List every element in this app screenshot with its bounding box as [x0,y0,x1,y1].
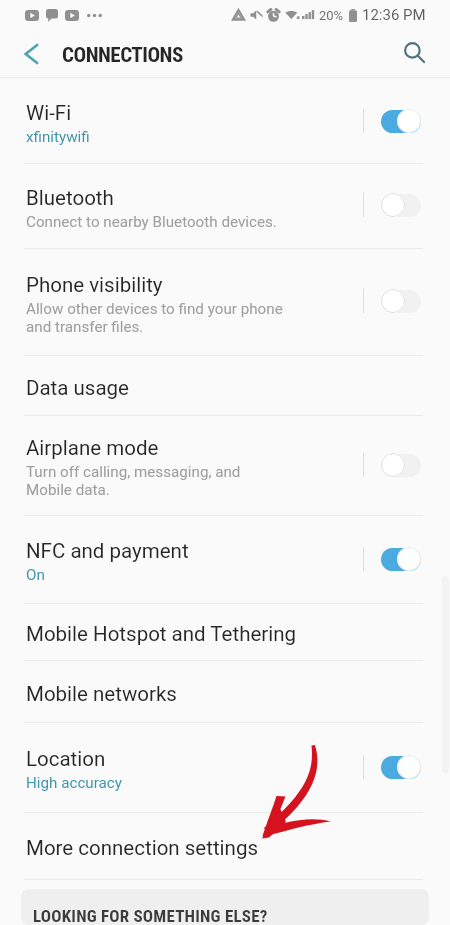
staticText: On [26,566,45,584]
staticText: NFC and payment [26,539,189,563]
staticText: Phone visibility [26,273,163,297]
staticText: Turn off calling, messaging, and Mobile … [26,463,241,499]
staticText: Bluetooth [26,186,114,210]
button[interactable]: More connection settings [0,813,450,880]
staticText: Mobile networks [26,682,177,706]
staticText: CONNECTIONS [62,43,183,68]
button[interactable]: Turn off [381,109,421,133]
staticText: Wi-Fi [26,101,72,125]
staticText: More connection settings [26,836,259,860]
staticText: Allow other devices to find your phone a… [26,300,283,336]
button[interactable]: Mobile networks [0,661,450,723]
button[interactable]: Search [395,33,433,71]
staticText: High accuracy [26,774,122,792]
button[interactable]: Phone visibility [0,249,450,356]
button[interactable]: Mobile Hotspot and Tethering [0,604,450,661]
staticText: Location [26,747,106,771]
staticText: Mobile Hotspot and Tethering [26,622,297,646]
staticText: Airplane mode [26,436,159,460]
button[interactable]: NFC and payment [0,516,450,604]
button[interactable]: Navigate up [11,34,51,74]
staticText: LOOKING FOR SOMETHING ELSE? [33,906,268,925]
staticText: Data usage [26,376,129,400]
staticText: 12:36 PM [362,6,426,24]
button[interactable]: Turn off [381,755,421,779]
staticText: Connect to nearby Bluetooth devices. [26,213,277,231]
button[interactable]: Turn on [381,289,421,313]
staticText: 20% [319,8,344,23]
button[interactable]: Airplane mode [0,416,450,516]
button[interactable]: Turn on [381,453,421,477]
staticText: xfinitywifi [26,128,90,146]
button[interactable]: Turn on [381,193,421,217]
button[interactable]: Turn off [381,547,421,571]
button[interactable]: Data usage [0,356,450,416]
button[interactable]: Wi-Fi [0,80,450,164]
button[interactable]: Bluetooth [0,164,450,249]
button[interactable]: Location [0,723,450,813]
